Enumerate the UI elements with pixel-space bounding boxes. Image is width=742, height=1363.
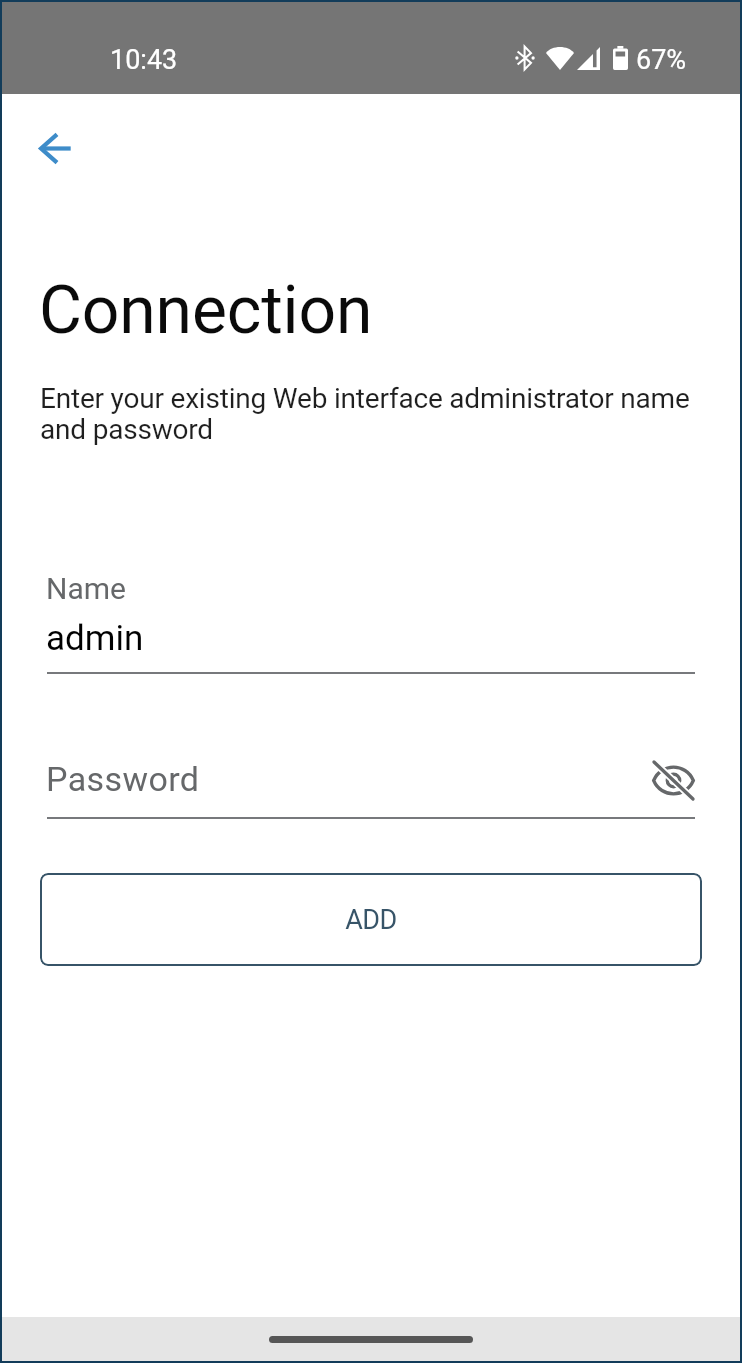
staticText: admin: [46, 618, 144, 659]
button[interactable]: Show password: [647, 754, 699, 806]
button[interactable]: Back: [32, 125, 78, 171]
staticText: Enter your existing Web interface admini…: [40, 382, 700, 446]
staticText: 10:43: [110, 44, 178, 76]
button[interactable]: Password: [47, 752, 695, 819]
staticText: Password: [46, 759, 200, 799]
button[interactable]: Name: [47, 560, 695, 674]
staticText: Name: [46, 571, 126, 606]
staticText: Connection: [39, 272, 373, 349]
staticText: ADD: [345, 904, 397, 936]
button[interactable]: ADD: [40, 873, 702, 966]
staticText: 67%: [636, 44, 687, 76]
